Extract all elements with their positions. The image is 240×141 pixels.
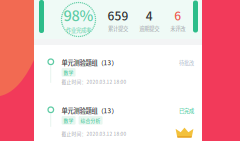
staticText: 作业完成率 [66,26,91,34]
staticText: 未评改 [170,25,185,32]
staticText: 单元测验题组（13） [62,58,118,67]
staticText: 4 [146,7,153,24]
staticText: 待批改 [179,59,194,67]
staticText: 综合分析 [81,117,101,124]
staticText: 单元测验题组（13） [62,106,118,115]
staticText: 截止时间：2020.03.12 18:00 [62,130,127,137]
staticText: 659 [107,7,128,24]
staticText: 累计提交 [108,25,128,32]
button[interactable]: 单元测验题组（13） [34,53,202,101]
staticText: 数学 [64,117,74,124]
button[interactable]: 单元测验题组（13） [34,101,202,141]
staticText: 已完成 [179,107,194,115]
staticText: 截止时间：2020.03.12 18:00 [62,78,127,85]
staticText: 逾期提交 [139,25,159,32]
staticText: 数学 [64,69,74,76]
staticText: 98% [63,4,93,25]
staticText: 6 [174,7,181,24]
